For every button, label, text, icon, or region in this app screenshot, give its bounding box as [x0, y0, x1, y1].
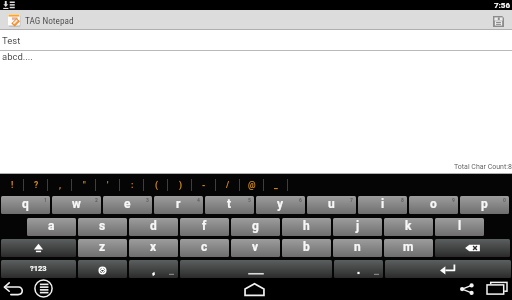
staticText: / — [226, 180, 230, 190]
staticText: w — [72, 197, 81, 211]
button[interactable]: Share — [458, 282, 476, 296]
staticText: z — [99, 240, 106, 254]
staticText: 0 — [503, 197, 506, 203]
staticText: o — [430, 197, 437, 211]
staticText: Total Char Count:8 — [454, 163, 512, 171]
button[interactable]: Space — [180, 260, 332, 278]
staticText: TAG Notepad — [25, 15, 74, 26]
staticText: f — [202, 219, 207, 233]
button[interactable]: k — [384, 218, 433, 236]
staticText: r — [176, 197, 181, 211]
button[interactable]: Enter — [385, 260, 511, 278]
button[interactable]: a — [27, 218, 76, 236]
button[interactable]: : — [120, 175, 144, 194]
button[interactable]: ( — [144, 175, 168, 194]
button[interactable]: Period — [334, 260, 383, 278]
button[interactable]: o — [409, 196, 458, 214]
staticText: q — [22, 197, 29, 211]
button[interactable]: Menu — [34, 279, 53, 298]
button[interactable]: v — [231, 239, 280, 257]
button[interactable]: b — [282, 239, 331, 257]
button[interactable]: n — [333, 239, 382, 257]
staticText: 7 — [350, 197, 353, 203]
staticText: m — [403, 240, 414, 254]
button[interactable]: Shift — [1, 239, 76, 257]
staticText: b — [303, 240, 310, 254]
button[interactable]: p — [460, 196, 509, 214]
button[interactable]: Home — [244, 283, 265, 296]
button[interactable]: t — [205, 196, 254, 214]
staticText: p — [481, 197, 488, 211]
staticText: j — [356, 219, 360, 233]
staticText: s — [99, 219, 106, 233]
button[interactable]: Settings — [78, 260, 127, 278]
button[interactable]: Backspace — [435, 239, 510, 257]
staticText: u — [328, 197, 335, 211]
staticText: ? — [34, 180, 39, 190]
staticText: y — [277, 197, 284, 211]
staticText: _ — [274, 180, 278, 190]
button[interactable]: j — [333, 218, 382, 236]
button[interactable]: g — [231, 218, 280, 236]
staticText: x — [150, 240, 157, 254]
button[interactable]: " — [72, 175, 96, 194]
staticText: 2 — [95, 197, 98, 203]
staticText: ) — [179, 180, 182, 190]
button[interactable]: e — [103, 196, 152, 214]
staticText: d — [150, 219, 157, 233]
button[interactable]: @ — [240, 175, 264, 194]
button[interactable]: x — [129, 239, 178, 257]
button[interactable]: ? — [24, 175, 48, 194]
button[interactable]: ?123 — [1, 260, 76, 278]
staticText: - — [202, 180, 206, 190]
button[interactable]: TAG Notepad — [0, 10, 512, 30]
button[interactable]: _ — [264, 175, 288, 194]
staticText: " — [83, 180, 86, 190]
staticText: ?123 — [30, 264, 47, 273]
staticText: l — [458, 219, 462, 233]
staticText: 5 — [248, 197, 251, 203]
button[interactable]: y — [256, 196, 305, 214]
button[interactable]: i — [358, 196, 407, 214]
staticText: Test — [2, 35, 21, 46]
staticText: ' — [107, 180, 109, 190]
button[interactable]: ' — [96, 175, 120, 194]
staticText: , — [59, 180, 62, 190]
button[interactable]: f — [180, 218, 229, 236]
button[interactable]: d — [129, 218, 178, 236]
staticText: ( — [155, 180, 158, 190]
staticText: : — [131, 180, 134, 190]
button[interactable]: s — [78, 218, 127, 236]
button[interactable]: m — [384, 239, 433, 257]
button[interactable]: ! — [0, 175, 24, 194]
staticText: 3 — [146, 197, 149, 203]
button[interactable]: w — [52, 196, 101, 214]
staticText: a — [48, 219, 55, 233]
button[interactable]: ) — [168, 175, 192, 194]
button[interactable]: , — [48, 175, 72, 194]
staticText: ! — [11, 180, 14, 190]
button[interactable]: u — [307, 196, 356, 214]
staticText: 9 — [452, 197, 455, 203]
staticText: e — [124, 197, 131, 211]
staticText: 4 — [197, 197, 200, 203]
staticText: n — [354, 240, 361, 254]
button[interactable]: q — [1, 196, 50, 214]
staticText: t — [227, 197, 232, 211]
button[interactable]: z — [78, 239, 127, 257]
button[interactable]: - — [192, 175, 216, 194]
button[interactable]: Back — [4, 282, 24, 296]
button[interactable]: / — [216, 175, 240, 194]
staticText: i — [381, 197, 385, 211]
staticText: 6 — [299, 197, 302, 203]
button[interactable]: h — [282, 218, 331, 236]
staticText: @ — [248, 180, 256, 190]
staticText: g — [252, 219, 259, 233]
button[interactable]: Comma — [129, 260, 178, 278]
button[interactable]: Save — [493, 16, 504, 27]
staticText: 7:56 — [494, 1, 511, 10]
button[interactable]: r — [154, 196, 203, 214]
button[interactable]: Recents — [485, 282, 509, 296]
button[interactable]: c — [180, 239, 229, 257]
button[interactable]: l — [435, 218, 484, 236]
